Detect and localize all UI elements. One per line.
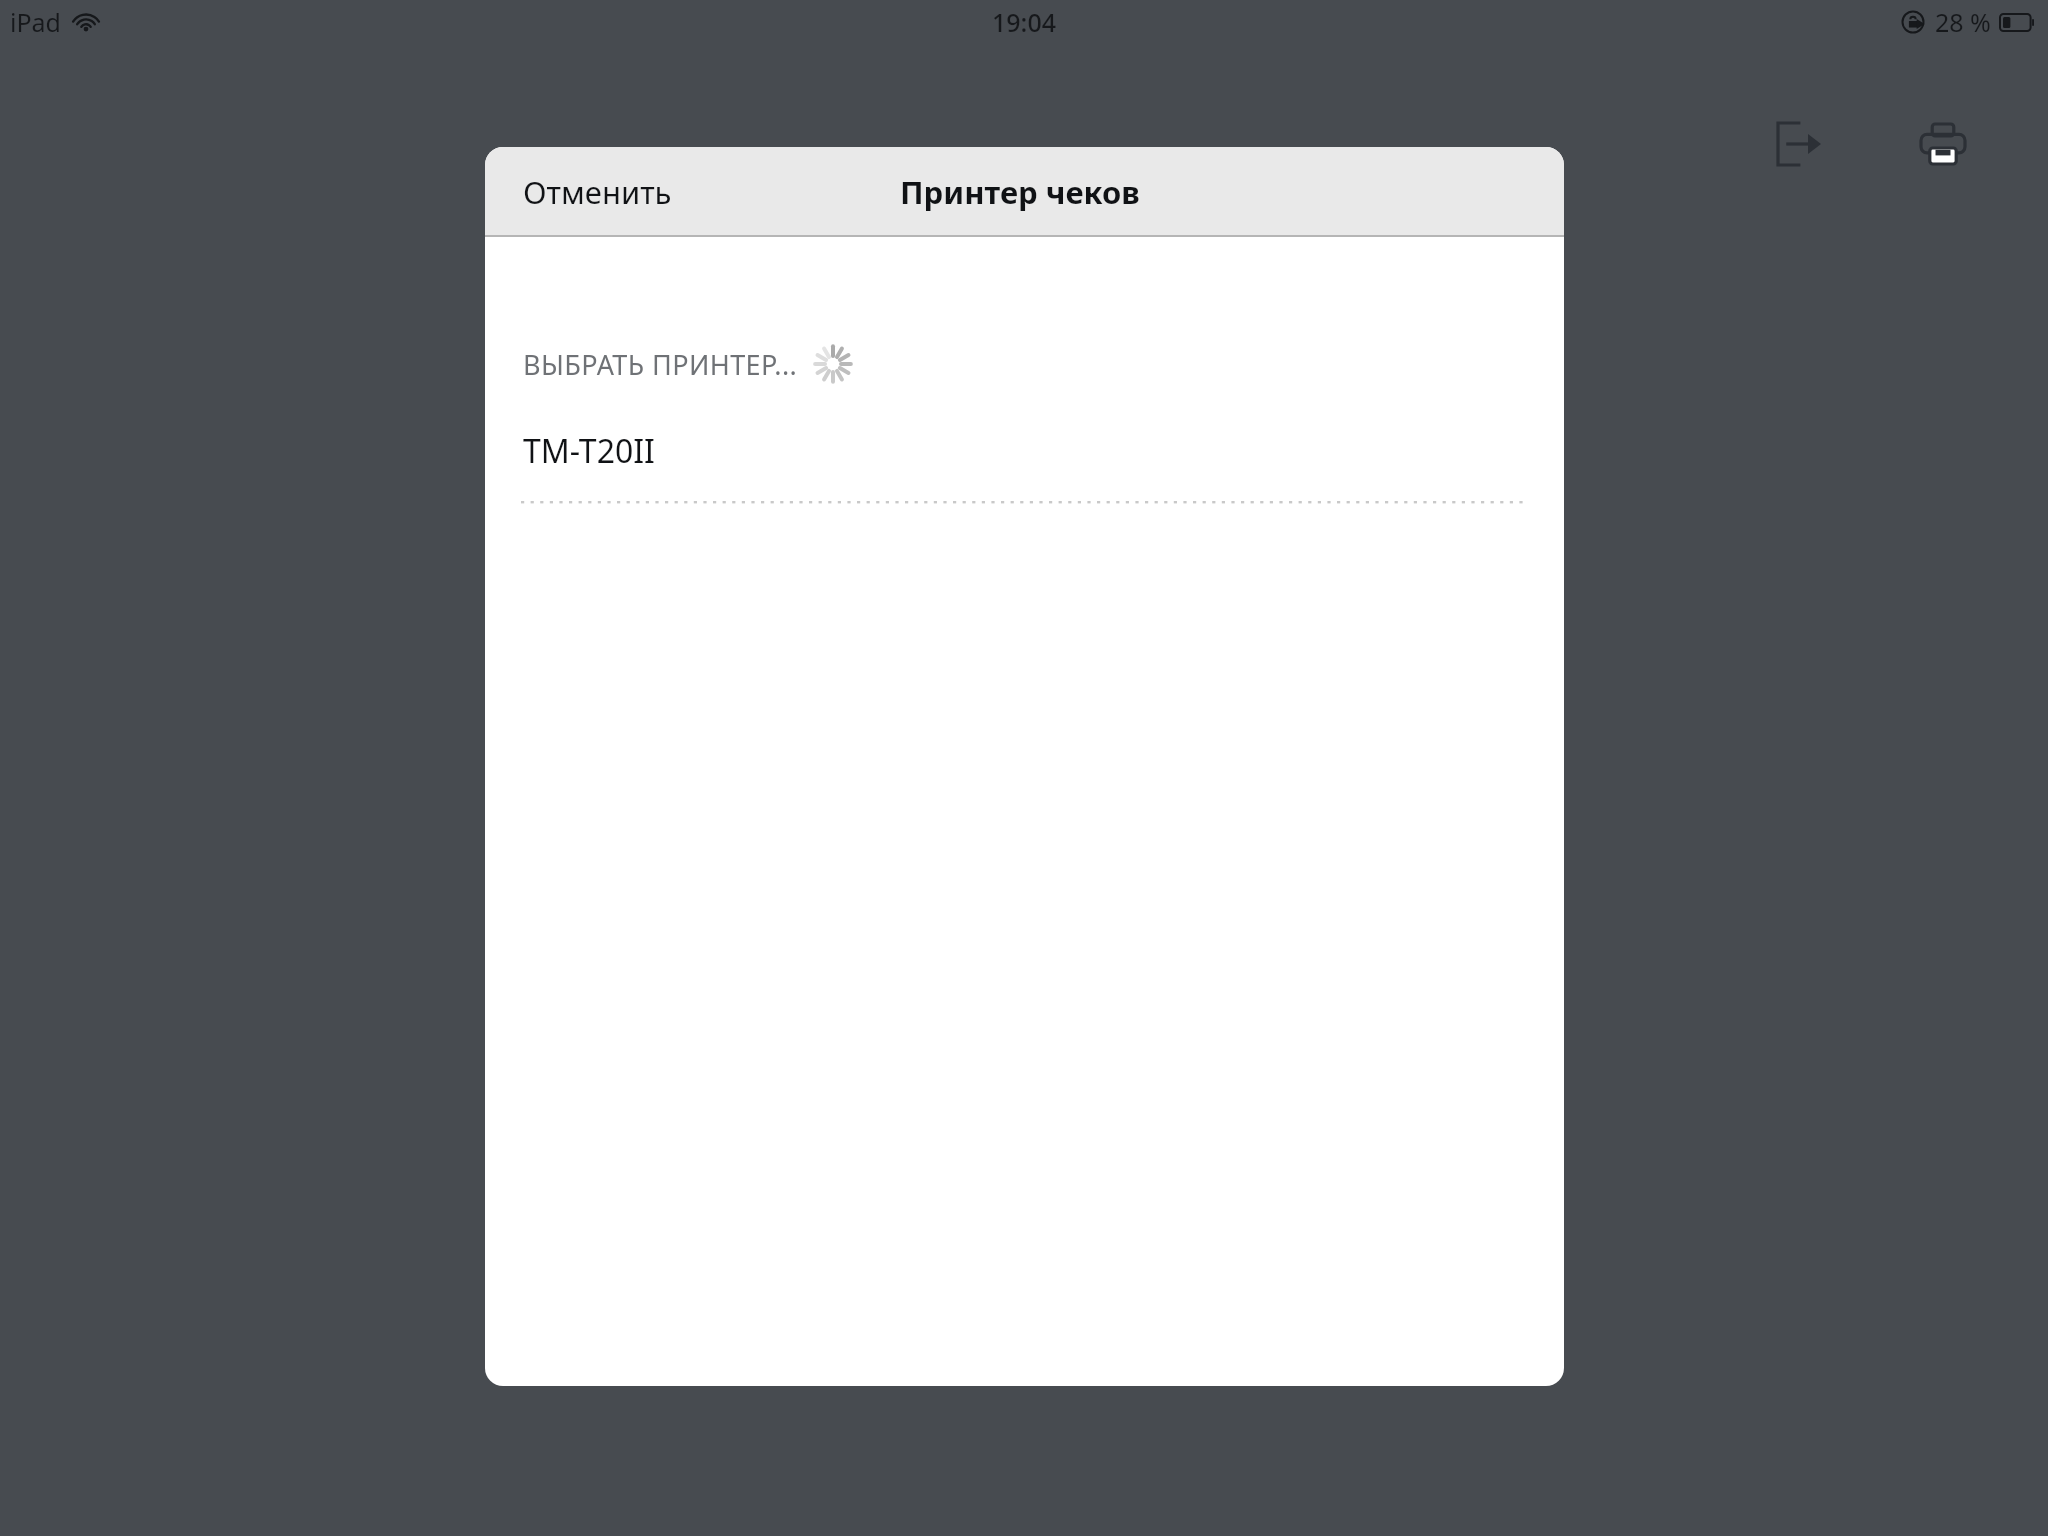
staticText: 19:04 <box>992 5 1057 39</box>
button[interactable]: Выход <box>1756 101 1842 187</box>
button[interactable]: Отменить <box>505 157 690 227</box>
staticText: iPad <box>10 5 61 39</box>
button[interactable]: TM-T20II <box>485 411 1564 491</box>
staticText: Отменить <box>523 171 672 213</box>
staticText: TM-T20II <box>523 429 655 473</box>
staticText: Принтер чеков <box>900 171 1140 213</box>
staticText: ВЫБРАТЬ ПРИНТЕР... <box>523 346 798 383</box>
staticText: 28 % <box>1935 5 1991 39</box>
button[interactable]: Печать <box>1900 101 1986 187</box>
